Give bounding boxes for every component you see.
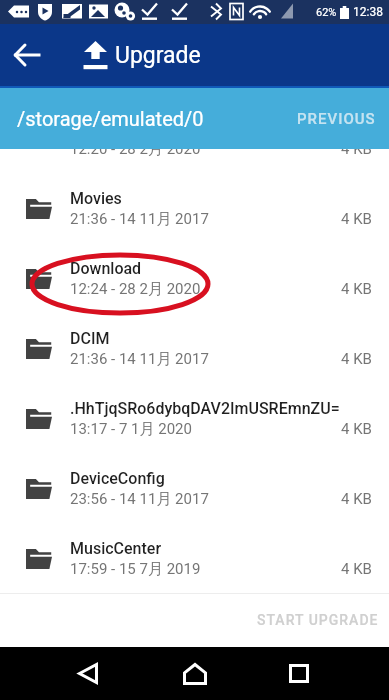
staticText: PREVIOUS xyxy=(297,110,376,128)
button[interactable]: Home xyxy=(159,647,230,700)
staticText: 17:59 - 15 7月 2019 xyxy=(70,560,201,579)
button[interactable]: Back xyxy=(52,647,123,700)
button[interactable]: Movies xyxy=(0,174,389,244)
button[interactable]: Back xyxy=(3,31,51,79)
staticText: 12:20 - 28 2月 2020 xyxy=(70,149,201,159)
staticText: Movies xyxy=(70,189,122,208)
staticText: .HhTjqSRo6dybqDAV2ImUSREmnZU= xyxy=(70,399,340,418)
staticText: 21:36 - 14 11月 2017 xyxy=(70,210,209,229)
button[interactable]: Music xyxy=(0,149,389,174)
staticText: 4 KB xyxy=(341,210,372,228)
staticText: Download xyxy=(70,259,142,278)
staticText: 4 KB xyxy=(341,149,372,158)
button[interactable]: START UPGRADE xyxy=(240,602,389,640)
staticText: 4 KB xyxy=(341,490,372,508)
staticText: 4 KB xyxy=(341,280,372,298)
staticText: MusicCenter xyxy=(70,539,162,558)
staticText: 4 KB xyxy=(341,420,372,438)
staticText: 21:36 - 14 11月 2017 xyxy=(70,350,209,369)
button[interactable]: .HhTjqSRo6dybqDAV2ImUSREmnZU= xyxy=(0,384,389,454)
staticText: DeviceConfig xyxy=(70,469,165,488)
staticText: 12:38 xyxy=(353,5,383,19)
button[interactable]: DeviceConfig xyxy=(0,454,389,524)
staticText: 62% xyxy=(316,6,337,19)
button[interactable]: DCIM xyxy=(0,314,389,384)
staticText: 4 KB xyxy=(341,350,372,368)
button[interactable]: MusicCenter xyxy=(0,524,389,593)
staticText: /storage/emulated/0 xyxy=(17,107,279,130)
staticText: 13:17 - 7 1月 2020 xyxy=(70,420,192,439)
button[interactable]: Download xyxy=(0,244,389,314)
staticText: 23:56 - 14 11月 2017 xyxy=(70,490,209,509)
button[interactable]: Recent apps xyxy=(263,647,334,700)
staticText: START UPGRADE xyxy=(257,612,379,628)
staticText: Upgrade xyxy=(115,42,201,69)
staticText: 12:24 - 28 2月 2020 xyxy=(70,280,201,299)
button[interactable]: PREVIOUS xyxy=(279,98,389,140)
staticText: 4 KB xyxy=(341,560,372,578)
staticText: DCIM xyxy=(70,329,110,348)
